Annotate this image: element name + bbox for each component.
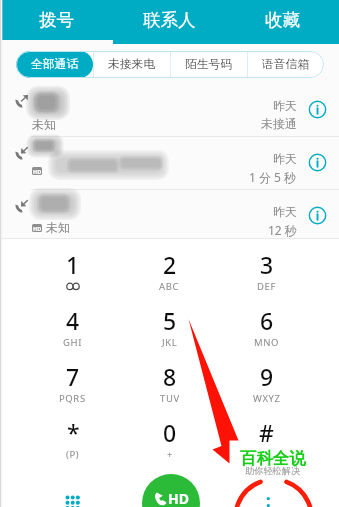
button[interactable]: HD xyxy=(0,137,339,190)
button[interactable]: 通话详情 xyxy=(307,205,328,226)
button[interactable]: 5 xyxy=(121,305,218,361)
staticText: MNO xyxy=(254,336,280,349)
button[interactable]: 4 xyxy=(24,305,121,361)
staticText: 4 xyxy=(66,305,80,336)
staticText: 助你轻松解决 xyxy=(245,465,301,477)
button[interactable]: 未知 xyxy=(0,84,339,137)
staticText: ABC xyxy=(159,280,180,293)
staticText: 昨天 xyxy=(273,204,297,219)
staticText: 联系人 xyxy=(143,9,196,31)
staticText: 8 xyxy=(163,361,177,392)
staticText: PQRS xyxy=(59,392,86,405)
staticText: # xyxy=(259,417,274,448)
staticText: TUV xyxy=(160,392,180,405)
button[interactable]: 陌生号码 xyxy=(171,51,247,78)
staticText: 陌生号码 xyxy=(185,57,233,72)
staticText: DEF xyxy=(257,280,276,293)
button[interactable]: 全部通话 xyxy=(16,51,93,78)
staticText: 未接通 xyxy=(261,116,297,131)
staticText: 语音信箱 xyxy=(262,57,310,72)
staticText: HD xyxy=(168,489,189,507)
button[interactable]: 通话详情 xyxy=(307,99,328,120)
button[interactable]: 联系人 xyxy=(113,0,226,44)
staticText: HD xyxy=(33,168,42,175)
staticText: 12 秒 xyxy=(268,222,297,238)
staticText: 未知 xyxy=(46,220,70,235)
staticText: HD xyxy=(33,225,42,232)
staticText: 7 xyxy=(66,361,80,392)
button[interactable]: 7 xyxy=(24,361,121,417)
staticText: 1 xyxy=(66,249,80,280)
staticText: 未接来电 xyxy=(108,57,156,72)
button[interactable]: 未接来电 xyxy=(94,51,170,78)
staticText: 3 xyxy=(260,249,274,280)
staticText: 0 xyxy=(163,417,177,448)
staticText: * xyxy=(67,417,80,448)
button[interactable]: 3 xyxy=(218,249,315,305)
staticText: 昨天 xyxy=(273,98,297,113)
button[interactable]: 更多选项 xyxy=(254,485,282,507)
staticText: 未知 xyxy=(32,117,56,132)
staticText: 昨天 xyxy=(273,151,297,166)
button[interactable]: 键盘 xyxy=(54,483,82,507)
button[interactable]: * xyxy=(24,417,121,473)
staticText: 9 xyxy=(260,361,274,392)
button[interactable]: 8 xyxy=(121,361,218,417)
button[interactable]: 拨号 xyxy=(0,0,113,44)
button[interactable]: 9 xyxy=(218,361,315,417)
button[interactable]: HD xyxy=(0,190,339,239)
staticText: 收藏 xyxy=(265,9,300,31)
staticText: WXYZ xyxy=(253,392,281,405)
staticText: 拨号 xyxy=(39,9,74,31)
staticText: (P) xyxy=(66,448,80,461)
button[interactable]: 收藏 xyxy=(226,0,339,44)
staticText: 6 xyxy=(260,305,274,336)
button[interactable]: 2 xyxy=(121,249,218,305)
button[interactable]: 6 xyxy=(218,305,315,361)
staticText: 全部通话 xyxy=(31,57,79,72)
button[interactable]: 拨打电话 xyxy=(142,474,200,507)
staticText: + xyxy=(167,448,174,461)
button[interactable]: # xyxy=(218,417,315,473)
button[interactable]: 通话详情 xyxy=(307,152,328,173)
button[interactable]: 0 xyxy=(121,417,218,473)
staticText: 5 xyxy=(163,305,177,336)
staticText: GHI xyxy=(63,336,82,349)
button[interactable]: 1 xyxy=(24,249,121,305)
button[interactable]: 语音信箱 xyxy=(248,51,324,78)
staticText: JKL xyxy=(162,336,178,349)
staticText: 2 xyxy=(163,249,177,280)
staticText: 1 分 5 秒 xyxy=(249,169,297,185)
staticText: 百科全说 xyxy=(240,448,306,469)
